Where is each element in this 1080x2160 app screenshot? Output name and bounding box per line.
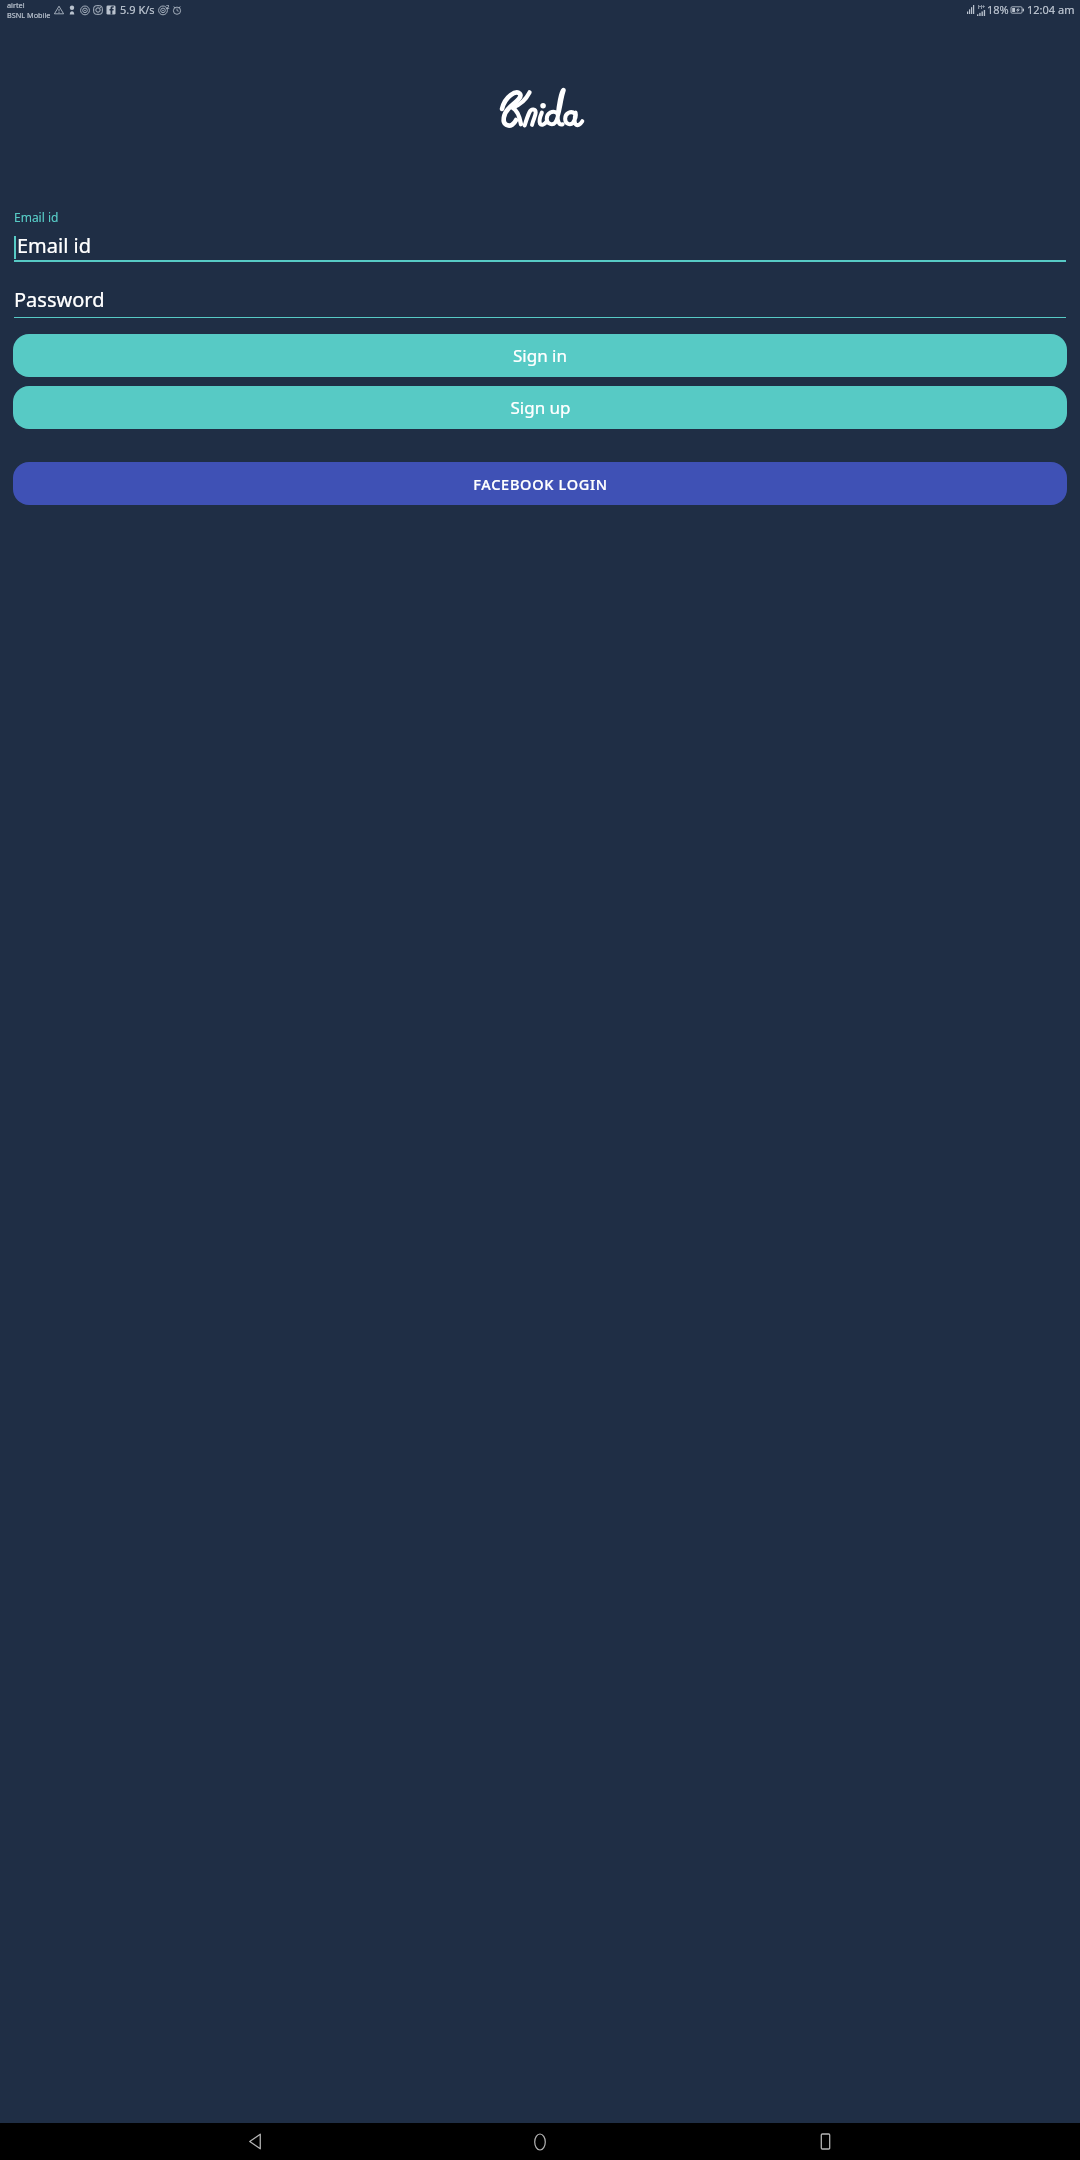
button[interactable]: Email id	[14, 209, 1066, 262]
button[interactable]: Password	[14, 286, 1066, 318]
staticText: Email id	[14, 209, 59, 225]
staticText: 2	[166, 3, 170, 11]
button[interactable]: FACEBOOK LOGIN	[13, 462, 1067, 505]
staticText: BSNL Mobile	[7, 10, 51, 19]
staticText: H+	[978, 3, 986, 10]
staticText: Sign up	[510, 396, 571, 419]
staticText: 18%	[987, 2, 1009, 17]
button[interactable]: Back	[225, 2123, 285, 2160]
staticText: Sign in	[513, 344, 567, 367]
staticText: FACEBOOK LOGIN	[473, 474, 608, 494]
staticText: Email id	[17, 232, 92, 259]
staticText: Password	[14, 286, 105, 313]
staticText: 5.9 K/s	[120, 2, 155, 17]
staticText: airtel	[7, 0, 25, 10]
button[interactable]: Sign up	[13, 386, 1067, 429]
staticText: 12:04 am	[1027, 2, 1075, 17]
button[interactable]: Recent apps	[795, 2123, 855, 2160]
button[interactable]: Home	[510, 2123, 570, 2160]
button[interactable]: Sign in	[13, 334, 1067, 377]
